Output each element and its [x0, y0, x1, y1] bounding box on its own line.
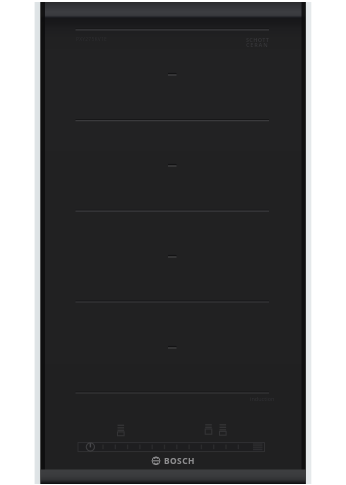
button[interactable]: Power on off — [78, 438, 104, 456]
staticText: BOSCH — [164, 455, 195, 466]
button[interactable]: Right cooking zone — [216, 419, 230, 437]
staticText: CERAN — [246, 41, 269, 48]
button[interactable]: Heat level slider — [104, 438, 253, 456]
button[interactable]: Cooking zone 1 — [76, 30, 270, 121]
staticText: SCHOTT — [246, 36, 270, 43]
staticText: induction — [250, 395, 275, 402]
button[interactable]: Timer — [202, 419, 216, 437]
button[interactable]: Left cooking zone — [114, 420, 128, 438]
button[interactable]: Power boost — [252, 438, 266, 456]
